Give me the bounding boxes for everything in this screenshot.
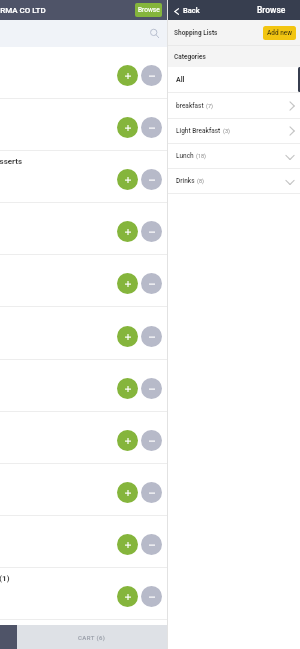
button[interactable]: Add item [117, 273, 138, 294]
button[interactable]: Add item [117, 430, 138, 451]
staticText: PHARMA CO LTD [0, 6, 46, 15]
button[interactable]: Lunch [168, 144, 300, 168]
button[interactable]: Mint Tea (1) [0, 568, 167, 619]
button[interactable]: Add item [0, 412, 167, 463]
button[interactable]: Remove item [141, 482, 162, 503]
staticText: All [176, 76, 185, 84]
staticText: Browse [257, 5, 286, 15]
button[interactable]: breakfast [168, 93, 300, 118]
staticText: Mint Tea (1) [0, 574, 10, 583]
button[interactable]: Add item [117, 326, 138, 347]
button[interactable]: Remove item [141, 534, 162, 555]
button[interactable]: Add item [0, 99, 167, 150]
staticText: (7) [206, 103, 213, 109]
staticText: Shopping Lists [174, 29, 218, 37]
button[interactable]: All [168, 67, 300, 92]
button[interactable]: Remove item [141, 273, 162, 294]
button[interactable]: Add item [0, 307, 167, 359]
button[interactable]: Add item [117, 117, 138, 138]
button[interactable]: Add item [0, 255, 167, 306]
button[interactable]: Remove item [141, 65, 162, 86]
button[interactable]: Add item [117, 534, 138, 555]
button[interactable]: Remove item [141, 326, 162, 347]
button[interactable]: Add item [117, 378, 138, 399]
button[interactable]: Remove item [141, 378, 162, 399]
button[interactable]: Remove item [141, 586, 162, 607]
button[interactable]: Add item [0, 360, 167, 411]
button[interactable]: Shopping Lists [168, 20, 300, 45]
button[interactable]: Light Breakfast [168, 119, 300, 143]
other: Search [149, 28, 160, 39]
button[interactable]: Add item [0, 464, 167, 515]
button[interactable]: Add item [117, 169, 138, 190]
staticText: Drinks [176, 177, 195, 185]
button[interactable]: Remove item [141, 117, 162, 138]
button[interactable]: Browse [135, 3, 162, 17]
button[interactable]: Add item [0, 516, 167, 567]
staticText: Browse [138, 6, 160, 14]
staticText: Lunch [176, 152, 194, 160]
button[interactable]: Remove item [141, 169, 162, 190]
staticText: (3) [223, 128, 230, 134]
staticText: Back [183, 6, 200, 15]
staticText: Categories [174, 53, 206, 61]
staticText: breakfast [176, 102, 204, 110]
staticText: CART (6) [78, 634, 106, 641]
button[interactable]: Add item [117, 221, 138, 242]
button[interactable]: Search [0, 20, 167, 47]
button[interactable]: Add item [117, 65, 138, 86]
button[interactable]: Add item [0, 47, 167, 98]
button[interactable]: Back [168, 0, 206, 20]
button[interactable]: Add item [117, 586, 138, 607]
button[interactable]: Add new [263, 26, 296, 40]
staticText: (18) [196, 153, 206, 159]
staticText: (8) [197, 178, 204, 184]
staticText: Desserts [0, 157, 22, 166]
staticText: Light Breakfast [176, 127, 221, 135]
button[interactable]: Drinks [168, 169, 300, 193]
staticText: Add new [267, 29, 293, 37]
button[interactable]: Add item [117, 482, 138, 503]
button[interactable]: Remove item [141, 430, 162, 451]
button[interactable]: Add item [0, 203, 167, 254]
button[interactable]: Remove item [141, 221, 162, 242]
button[interactable]: Desserts [0, 151, 167, 202]
button[interactable]: CART (6) [17, 625, 167, 649]
